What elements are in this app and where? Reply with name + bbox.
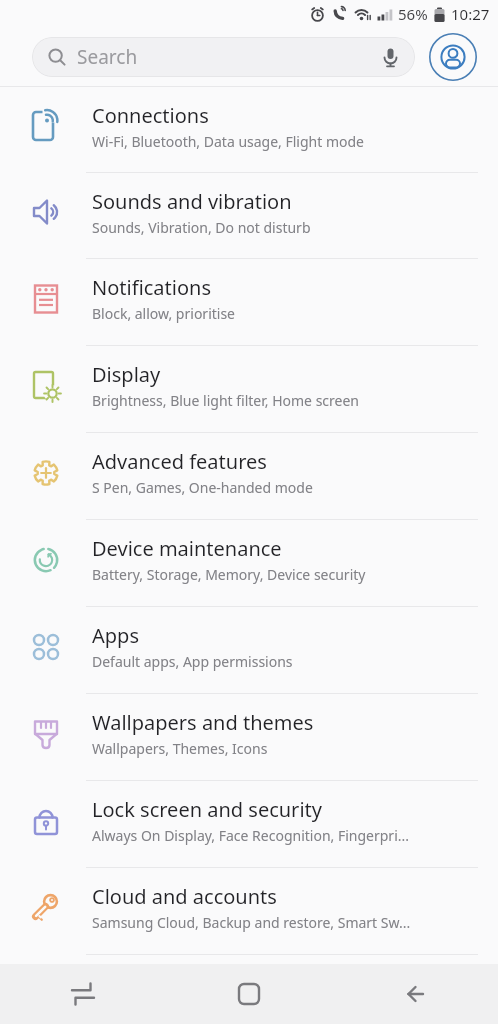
button[interactable]: Advanced features — [0, 433, 498, 520]
staticText: Display — [92, 361, 161, 388]
button[interactable]: Lock screen and security — [0, 781, 498, 868]
button[interactable]: Cloud and accounts — [0, 868, 498, 955]
staticText: Sounds, Vibration, Do not disturb — [92, 218, 311, 237]
staticText: Notifications — [92, 274, 211, 301]
button[interactable]: Device maintenance — [0, 520, 498, 607]
staticText: Lock screen and security — [92, 796, 322, 823]
button[interactable]: Sounds and vibration — [0, 173, 498, 259]
staticText: Battery, Storage, Memory, Device securit… — [92, 565, 366, 584]
button[interactable] — [428, 32, 478, 82]
staticText: Cloud and accounts — [92, 883, 277, 910]
staticText: Wi-Fi, Bluetooth, Data usage, Flight mod… — [92, 132, 365, 151]
staticText: Connections — [92, 102, 209, 129]
staticText: S Pen, Games, One-handed mode — [92, 478, 313, 497]
staticText: Sounds and vibration — [92, 188, 292, 215]
staticText: Advanced features — [92, 448, 267, 475]
staticText: Default apps, App permissions — [92, 652, 293, 671]
button[interactable]: Display — [0, 346, 498, 433]
staticText: 10:27 — [451, 4, 490, 24]
staticText: Wallpapers and themes — [92, 709, 314, 736]
button[interactable] — [332, 964, 498, 1024]
staticText: Device maintenance — [92, 535, 282, 562]
button[interactable]: Search — [32, 37, 415, 77]
staticText: Brightness, Blue light filter, Home scre… — [92, 391, 360, 410]
staticText: Always On Display, Face Recognition, Fin… — [92, 826, 410, 845]
staticText: 56% — [398, 4, 428, 24]
staticText: Wallpapers, Themes, Icons — [92, 739, 268, 758]
staticText: Block, allow, prioritise — [92, 304, 236, 323]
button[interactable]: Notifications — [0, 259, 498, 346]
staticText: Search — [77, 44, 138, 70]
button[interactable] — [166, 964, 332, 1024]
button[interactable] — [0, 964, 166, 1024]
staticText: Apps — [92, 622, 139, 649]
button[interactable]: Apps — [0, 607, 498, 694]
staticText: Samsung Cloud, Backup and restore, Smart… — [92, 913, 411, 932]
button[interactable]: Connections — [0, 87, 498, 173]
button[interactable]: Wallpapers and themes — [0, 694, 498, 781]
